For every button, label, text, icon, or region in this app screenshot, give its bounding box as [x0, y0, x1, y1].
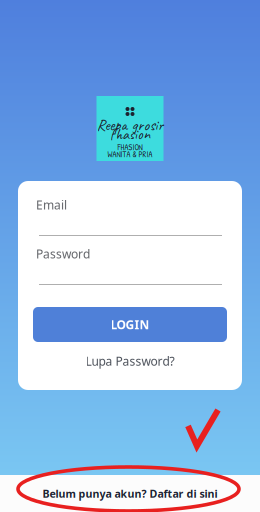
- staticText: Lupa Password?: [85, 353, 174, 369]
- button[interactable]: Belum punya akun? Daftar di sini: [0, 475, 260, 512]
- staticText: WANITA & PRIA: [107, 149, 152, 160]
- button[interactable]: LOGIN: [33, 307, 227, 342]
- staticText: LOGIN: [110, 316, 149, 332]
- staticText: Belum punya akun? Daftar di sini: [42, 486, 217, 501]
- staticText: Email: [36, 197, 67, 213]
- button[interactable]: Lupa Password?: [33, 354, 227, 368]
- staticText: Password: [36, 246, 90, 262]
- staticText: fhasion: [110, 124, 150, 144]
- staticText: FHASION: [117, 142, 142, 153]
- staticText: Reepa grosir: [96, 115, 163, 135]
